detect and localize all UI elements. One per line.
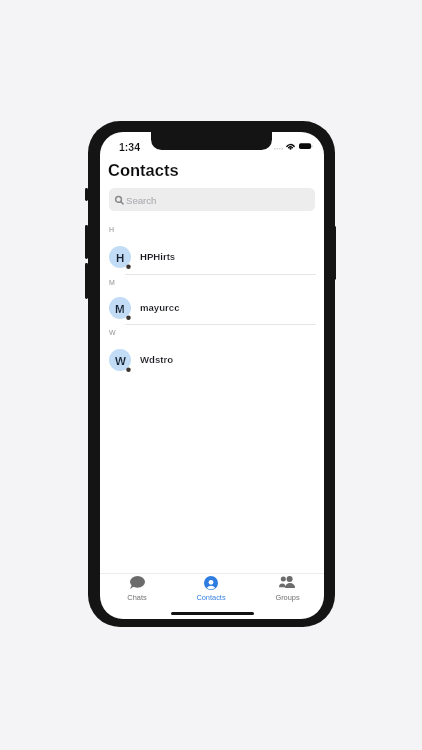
staticText: Chats: [127, 593, 147, 601]
staticText: W: [109, 329, 116, 337]
staticText: H: [109, 226, 115, 234]
staticText: Wdstro: [140, 354, 174, 365]
button[interactable]: Search: [109, 188, 315, 211]
staticText: Contacts: [196, 593, 226, 601]
button[interactable]: Chats: [106, 574, 168, 602]
staticText: Groups: [275, 593, 300, 601]
button[interactable]: Contacts: [180, 574, 242, 602]
button[interactable]: H: [100, 240, 324, 274]
staticText: Search: [126, 195, 157, 206]
button[interactable]: Groups: [256, 574, 318, 602]
staticText: M: [115, 302, 125, 315]
other: Chats: [130, 576, 145, 589]
staticText: Contacts: [108, 161, 179, 179]
other: Contacts: [204, 576, 218, 590]
other: Groups: [279, 576, 295, 588]
staticText: HPHirts: [140, 251, 176, 262]
staticText: 1:34: [119, 141, 141, 153]
staticText: mayurcc: [140, 302, 180, 313]
button[interactable]: W: [100, 343, 324, 377]
staticText: W: [115, 354, 126, 367]
staticText: H: [116, 251, 125, 264]
button[interactable]: M: [100, 291, 324, 325]
staticText: M: [109, 279, 115, 287]
